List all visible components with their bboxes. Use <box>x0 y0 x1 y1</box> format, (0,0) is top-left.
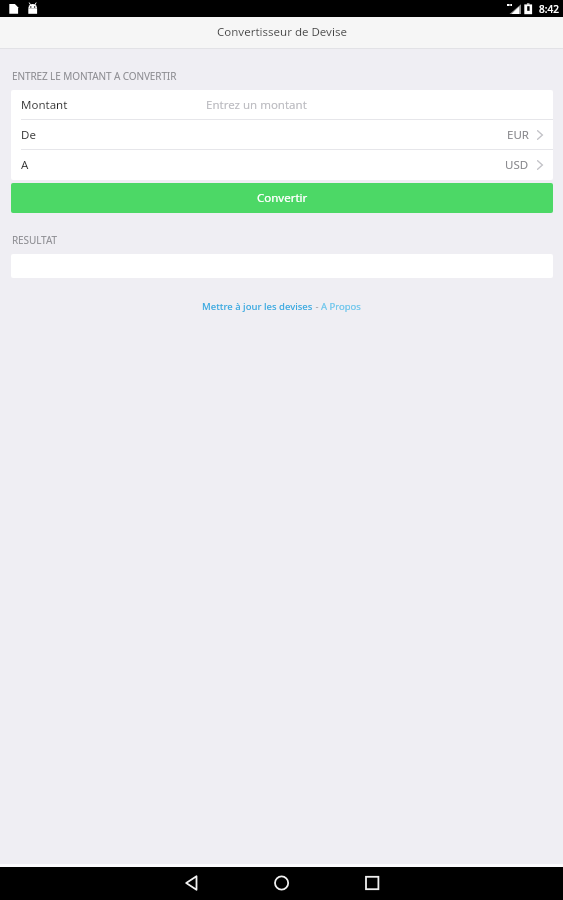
button[interactable]: Back <box>146 867 236 900</box>
staticText: RESULTAT <box>12 233 57 247</box>
staticText: A Propos <box>321 300 361 313</box>
button[interactable]: A <box>11 150 553 179</box>
button[interactable]: A Propos <box>321 300 361 313</box>
button[interactable]: Montant <box>11 90 553 119</box>
button[interactable]: De <box>11 120 553 149</box>
button[interactable]: Home <box>236 867 326 900</box>
staticText: Montant <box>21 97 68 113</box>
staticText: ENTREZ LE MONTANT A CONVERTIR <box>12 69 177 83</box>
staticText: USD <box>505 157 529 173</box>
staticText: Convertisseur de Devise <box>217 24 347 40</box>
staticText: Mettre à jour les devises <box>202 300 313 313</box>
staticText: - <box>313 300 321 313</box>
staticText: Convertir <box>257 190 308 206</box>
staticText: De <box>21 127 36 143</box>
button[interactable]: Convertir <box>11 183 553 213</box>
button[interactable]: Mettre à jour les devises <box>202 300 313 313</box>
button[interactable]: Recent apps <box>326 867 416 900</box>
staticText: EUR <box>507 127 529 143</box>
staticText: Entrez un montant <box>206 97 307 113</box>
staticText: A <box>21 157 29 173</box>
staticText: 8:42 <box>539 2 559 16</box>
